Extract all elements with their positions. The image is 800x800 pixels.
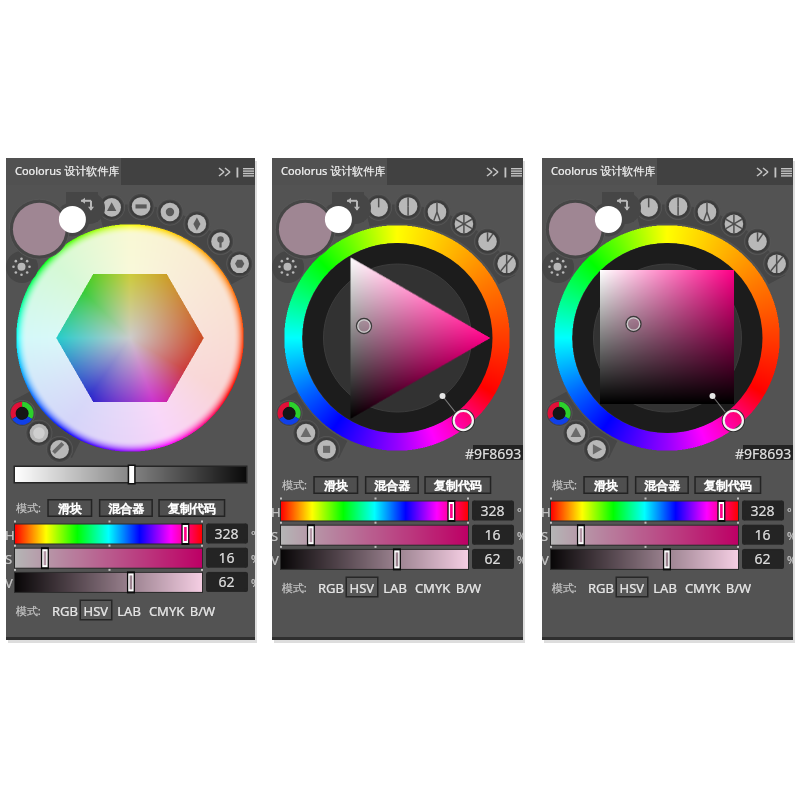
other: Coolorus colour picker panels — [0, 0, 800, 800]
